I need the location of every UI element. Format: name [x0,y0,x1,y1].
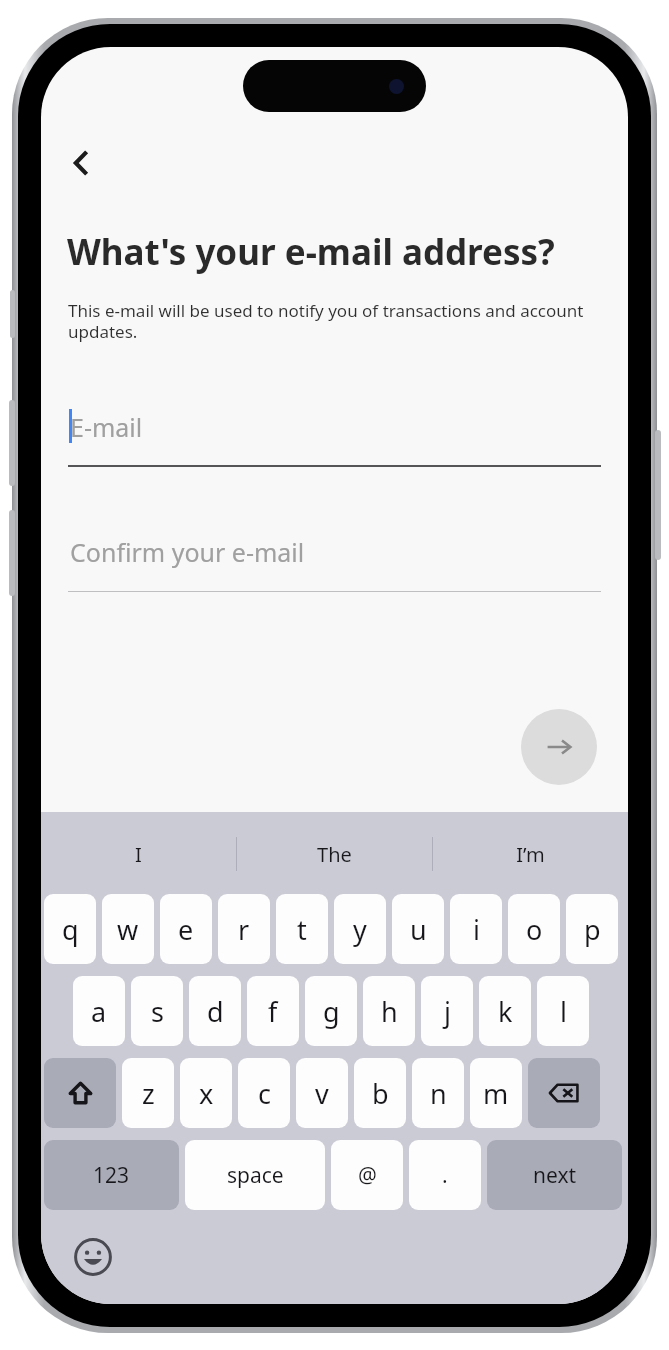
staticText: m [483,1075,509,1112]
button[interactable]: Shift [44,1058,116,1128]
button[interactable]: I [41,826,236,882]
button[interactable]: v [296,1058,348,1128]
staticText: I’m [516,841,545,868]
staticText: i [473,911,480,948]
staticText: a [91,993,107,1030]
staticText: c [258,1075,271,1112]
staticText: f [268,993,278,1030]
button[interactable]: y [334,894,386,964]
button[interactable]: Confirm your e-mail [68,520,601,592]
staticText: . [442,1161,448,1190]
staticText: r [238,911,250,948]
button[interactable]: n [412,1058,464,1128]
staticText: b [372,1075,389,1112]
button[interactable]: i [450,894,502,964]
button[interactable]: I’m [433,826,628,882]
button[interactable]: p [566,894,618,964]
staticText: l [560,993,567,1030]
button[interactable]: b [354,1058,406,1128]
button[interactable]: r [218,894,270,964]
button[interactable]: q [44,894,96,964]
button[interactable]: Emoji [66,1230,120,1284]
button[interactable]: w [102,894,154,964]
button[interactable]: o [508,894,560,964]
staticText: z [142,1075,155,1112]
button[interactable]: a [73,976,125,1046]
staticText: v [315,1075,329,1112]
button[interactable]: t [276,894,328,964]
staticText: e [178,911,194,948]
button[interactable]: e [160,894,212,964]
staticText: next [533,1161,577,1190]
button[interactable]: Backspace [528,1058,600,1128]
staticText: s [151,993,164,1030]
button[interactable]: j [421,976,473,1046]
staticText: x [199,1075,214,1112]
button[interactable]: space [185,1140,325,1210]
staticText: o [526,911,543,948]
staticText: j [444,993,451,1030]
staticText: 123 [93,1161,130,1190]
button[interactable]: u [392,894,444,964]
button[interactable]: next [487,1140,622,1210]
button[interactable]: z [122,1058,174,1128]
button[interactable]: l [537,976,589,1046]
staticText: n [430,1075,447,1112]
staticText: space [227,1161,284,1190]
button[interactable]: h [363,976,415,1046]
button[interactable]: . [409,1140,481,1210]
button[interactable]: s [131,976,183,1046]
staticText: @ [358,1161,377,1190]
button[interactable]: m [470,1058,522,1128]
staticText: The [317,841,352,868]
staticText: p [584,911,601,948]
staticText: t [297,911,307,948]
button[interactable]: c [238,1058,290,1128]
button[interactable]: 123 [44,1140,179,1210]
staticText: g [323,993,340,1030]
staticText: d [207,993,224,1030]
staticText: What's your e-mail address? [67,228,627,276]
button[interactable]: The [237,826,432,882]
button[interactable]: k [479,976,531,1046]
button[interactable]: d [189,976,241,1046]
staticText: E-mail [70,410,143,444]
staticText: q [62,911,79,948]
button[interactable]: Next [521,709,597,785]
staticText: y [353,911,367,948]
button[interactable]: @ [331,1140,403,1210]
button[interactable]: x [180,1058,232,1128]
button[interactable]: g [305,976,357,1046]
button[interactable]: f [247,976,299,1046]
staticText: This e-mail will be used to notify you o… [68,299,596,343]
button[interactable]: Back [53,135,109,191]
staticText: w [117,911,139,948]
staticText: k [498,993,513,1030]
staticText: h [381,993,398,1030]
staticText: Confirm your e-mail [70,535,305,569]
staticText: u [410,911,427,948]
staticText: I [135,841,142,868]
button[interactable]: E-mail [68,395,601,467]
